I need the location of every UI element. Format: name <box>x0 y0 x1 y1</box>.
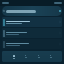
button[interactable]: Library <box>37 51 40 62</box>
button[interactable]: Open <box>2 28 62 38</box>
button[interactable]: Search <box>2 6 62 16</box>
button[interactable]: Explore <box>24 51 27 62</box>
button[interactable]: Open <box>2 17 62 27</box>
button[interactable]: Profile <box>49 51 52 62</box>
button[interactable]: Home <box>12 51 15 62</box>
other: Search <box>3 10 5 12</box>
button[interactable]: Open <box>2 39 62 49</box>
